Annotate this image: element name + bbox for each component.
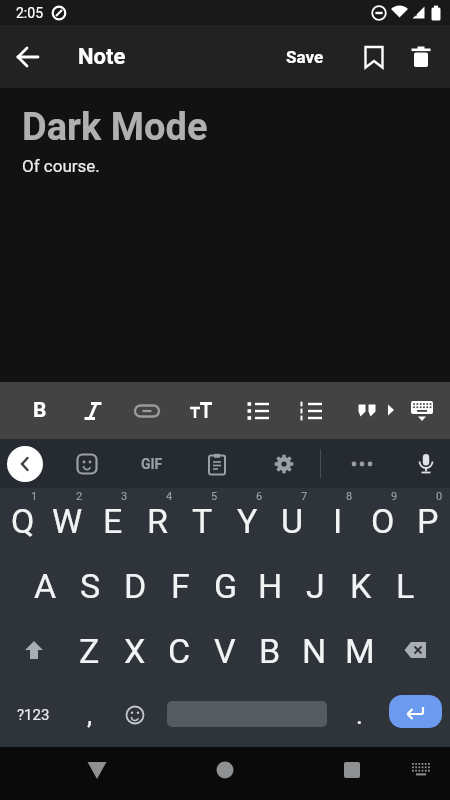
button[interactable]: GIF bbox=[130, 439, 174, 488]
button[interactable]: E bbox=[90, 488, 135, 553]
button[interactable]: I bbox=[315, 488, 360, 553]
button[interactable] bbox=[157, 683, 337, 747]
button[interactable]: Save bbox=[286, 25, 324, 88]
staticText: 3 bbox=[121, 490, 128, 503]
button[interactable]: T bbox=[180, 488, 225, 553]
staticText: 2 bbox=[76, 490, 83, 503]
staticText: X bbox=[124, 631, 146, 671]
button[interactable]: W bbox=[45, 488, 90, 553]
staticText: 1 bbox=[31, 490, 38, 503]
button[interactable]: Q bbox=[0, 488, 45, 553]
staticText: GIF bbox=[141, 456, 163, 472]
button[interactable] bbox=[382, 683, 449, 747]
button[interactable]: K bbox=[338, 553, 383, 618]
button[interactable]: C bbox=[157, 618, 202, 683]
button[interactable]: A bbox=[23, 553, 68, 618]
staticText: 6 bbox=[256, 490, 263, 503]
button[interactable]: X bbox=[112, 618, 157, 683]
staticText: W bbox=[52, 501, 83, 541]
button[interactable] bbox=[330, 747, 374, 800]
button[interactable]: Z bbox=[67, 618, 112, 683]
button[interactable] bbox=[262, 439, 306, 488]
button[interactable] bbox=[0, 25, 56, 88]
staticText: 2:05 bbox=[16, 5, 43, 21]
button[interactable] bbox=[65, 439, 109, 488]
button[interactable] bbox=[404, 439, 448, 488]
staticText: O bbox=[371, 501, 395, 541]
button[interactable]: , bbox=[67, 683, 112, 747]
button[interactable]: L bbox=[383, 553, 428, 618]
button[interactable]: S bbox=[68, 553, 113, 618]
staticText: 9 bbox=[391, 490, 398, 503]
button[interactable] bbox=[382, 618, 449, 683]
staticText: 5 bbox=[211, 490, 218, 503]
staticText: G bbox=[214, 566, 238, 606]
button[interactable]: . bbox=[337, 683, 382, 747]
staticText: Save bbox=[286, 47, 324, 67]
staticText: D bbox=[124, 566, 147, 606]
staticText: B bbox=[259, 631, 281, 671]
staticText: C bbox=[168, 631, 191, 671]
button[interactable] bbox=[125, 382, 169, 439]
staticText: Z bbox=[79, 631, 100, 671]
button[interactable]: B bbox=[247, 618, 292, 683]
staticText: Dark Mode bbox=[22, 105, 208, 150]
staticText: 4 bbox=[166, 490, 173, 503]
staticText: Y bbox=[237, 501, 258, 541]
button[interactable] bbox=[112, 683, 157, 747]
staticText: F bbox=[171, 566, 190, 606]
staticText: U bbox=[281, 501, 304, 541]
button[interactable]: B bbox=[18, 382, 62, 439]
button[interactable]: N bbox=[292, 618, 337, 683]
button[interactable] bbox=[345, 382, 389, 439]
button[interactable] bbox=[179, 382, 223, 439]
button[interactable]: Y bbox=[225, 488, 270, 553]
button[interactable] bbox=[236, 382, 280, 439]
button[interactable] bbox=[340, 439, 384, 488]
staticText: R bbox=[147, 501, 168, 541]
staticText: . bbox=[356, 700, 363, 730]
button[interactable]: G bbox=[203, 553, 248, 618]
button[interactable]: ?123 bbox=[0, 683, 67, 747]
staticText: , bbox=[87, 700, 93, 730]
staticText: ?123 bbox=[17, 706, 50, 724]
button[interactable] bbox=[399, 747, 443, 800]
button[interactable]: J bbox=[293, 553, 338, 618]
button[interactable] bbox=[396, 25, 446, 88]
button[interactable]: P bbox=[405, 488, 450, 553]
button[interactable]: V bbox=[202, 618, 247, 683]
button[interactable] bbox=[203, 747, 247, 800]
button[interactable]: F bbox=[158, 553, 203, 618]
button[interactable] bbox=[195, 439, 239, 488]
staticText: P bbox=[417, 501, 439, 541]
button[interactable]: O bbox=[360, 488, 405, 553]
staticText: I bbox=[333, 501, 343, 541]
button[interactable] bbox=[75, 747, 119, 800]
staticText: K bbox=[350, 566, 372, 606]
button[interactable] bbox=[71, 382, 115, 439]
button[interactable] bbox=[400, 382, 444, 439]
staticText: S bbox=[80, 566, 101, 606]
staticText: 7 bbox=[301, 490, 308, 503]
button[interactable]: D bbox=[113, 553, 158, 618]
staticText: L bbox=[396, 566, 415, 606]
button[interactable]: R bbox=[135, 488, 180, 553]
staticText: E bbox=[103, 501, 123, 541]
staticText: 8 bbox=[346, 490, 353, 503]
button[interactable]: M bbox=[337, 618, 382, 683]
button[interactable] bbox=[7, 446, 43, 482]
staticText: H bbox=[258, 566, 283, 606]
staticText: 0 bbox=[436, 490, 443, 503]
staticText: T bbox=[192, 501, 213, 541]
button[interactable]: U bbox=[270, 488, 315, 553]
staticText: Q bbox=[11, 501, 35, 541]
button[interactable] bbox=[289, 382, 333, 439]
staticText: Of course. bbox=[22, 156, 100, 176]
staticText: V bbox=[214, 631, 236, 671]
button[interactable] bbox=[352, 25, 396, 88]
staticText: A bbox=[34, 566, 57, 606]
button[interactable]: H bbox=[248, 553, 293, 618]
staticText: B bbox=[33, 398, 47, 423]
button[interactable] bbox=[0, 618, 67, 683]
staticText: N bbox=[302, 631, 327, 671]
